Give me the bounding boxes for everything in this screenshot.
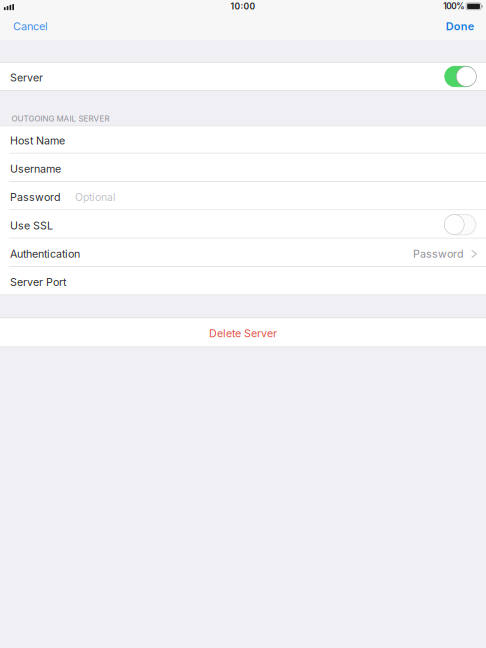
staticText: Optional [75, 191, 116, 203]
staticText: Authentication [10, 247, 80, 260]
button[interactable]: Server Port [0, 267, 486, 295]
staticText: Done [446, 20, 474, 33]
button[interactable]: Username [0, 154, 486, 182]
button[interactable]: Password [0, 182, 486, 210]
staticText: Delete Server [209, 327, 277, 340]
button[interactable]: Cancel [0, 13, 69, 40]
staticText: OUTGOING MAIL SERVER [11, 114, 109, 123]
staticText: Server Port [10, 276, 66, 289]
button[interactable]: Use SSL, off [445, 214, 476, 235]
staticText: 100% [443, 1, 464, 11]
staticText: Host Name [10, 134, 65, 147]
staticText: Username [10, 162, 61, 175]
staticText: Use SSL [10, 219, 53, 232]
staticText: Password [413, 247, 464, 260]
staticText: 10:00 [230, 1, 255, 11]
button[interactable]: Authentication [0, 239, 486, 267]
staticText: Server [10, 71, 43, 84]
button[interactable]: Host Name [0, 125, 486, 154]
button[interactable]: Done [424, 13, 486, 40]
staticText: Cancel [13, 20, 48, 33]
staticText: Password [10, 191, 61, 204]
button[interactable]: Server, on [445, 66, 476, 87]
button[interactable]: Delete Server [0, 317, 486, 347]
